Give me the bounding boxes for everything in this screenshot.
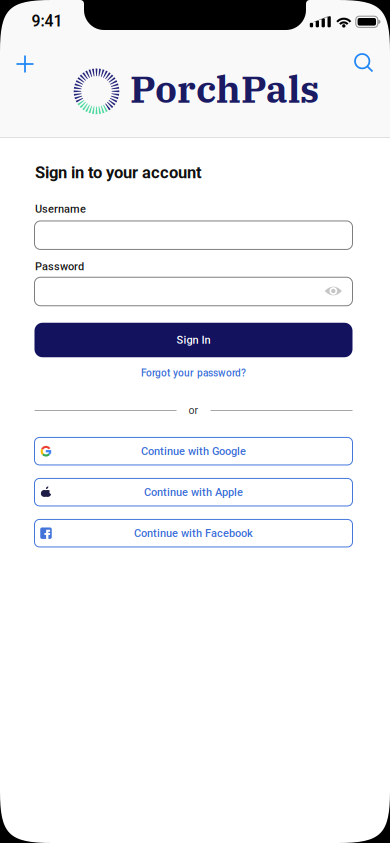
staticText: Continue with Facebook [134, 527, 253, 540]
staticText: Username [35, 203, 86, 215]
button[interactable]: Forgot your password? [141, 367, 246, 379]
button[interactable]: Continue with Google [34, 437, 352, 465]
button[interactable]: Search [349, 48, 379, 78]
staticText: Continue with Apple [144, 486, 243, 499]
staticText: Password [35, 260, 84, 273]
staticText: Sign In [176, 334, 210, 346]
button[interactable]: Add [10, 49, 40, 79]
staticText: PorchPals [130, 64, 319, 113]
button[interactable]: Show password [321, 279, 345, 303]
staticText: Forgot your password? [141, 367, 246, 379]
staticText: Sign in to your account [35, 163, 202, 182]
staticText: 9:41 [31, 12, 62, 30]
button[interactable]: Continue with Facebook [34, 519, 352, 547]
button[interactable]: Sign In [34, 323, 352, 357]
button[interactable]: Continue with Apple [34, 478, 352, 506]
staticText: Continue with Google [141, 445, 246, 458]
staticText: or [188, 404, 198, 417]
